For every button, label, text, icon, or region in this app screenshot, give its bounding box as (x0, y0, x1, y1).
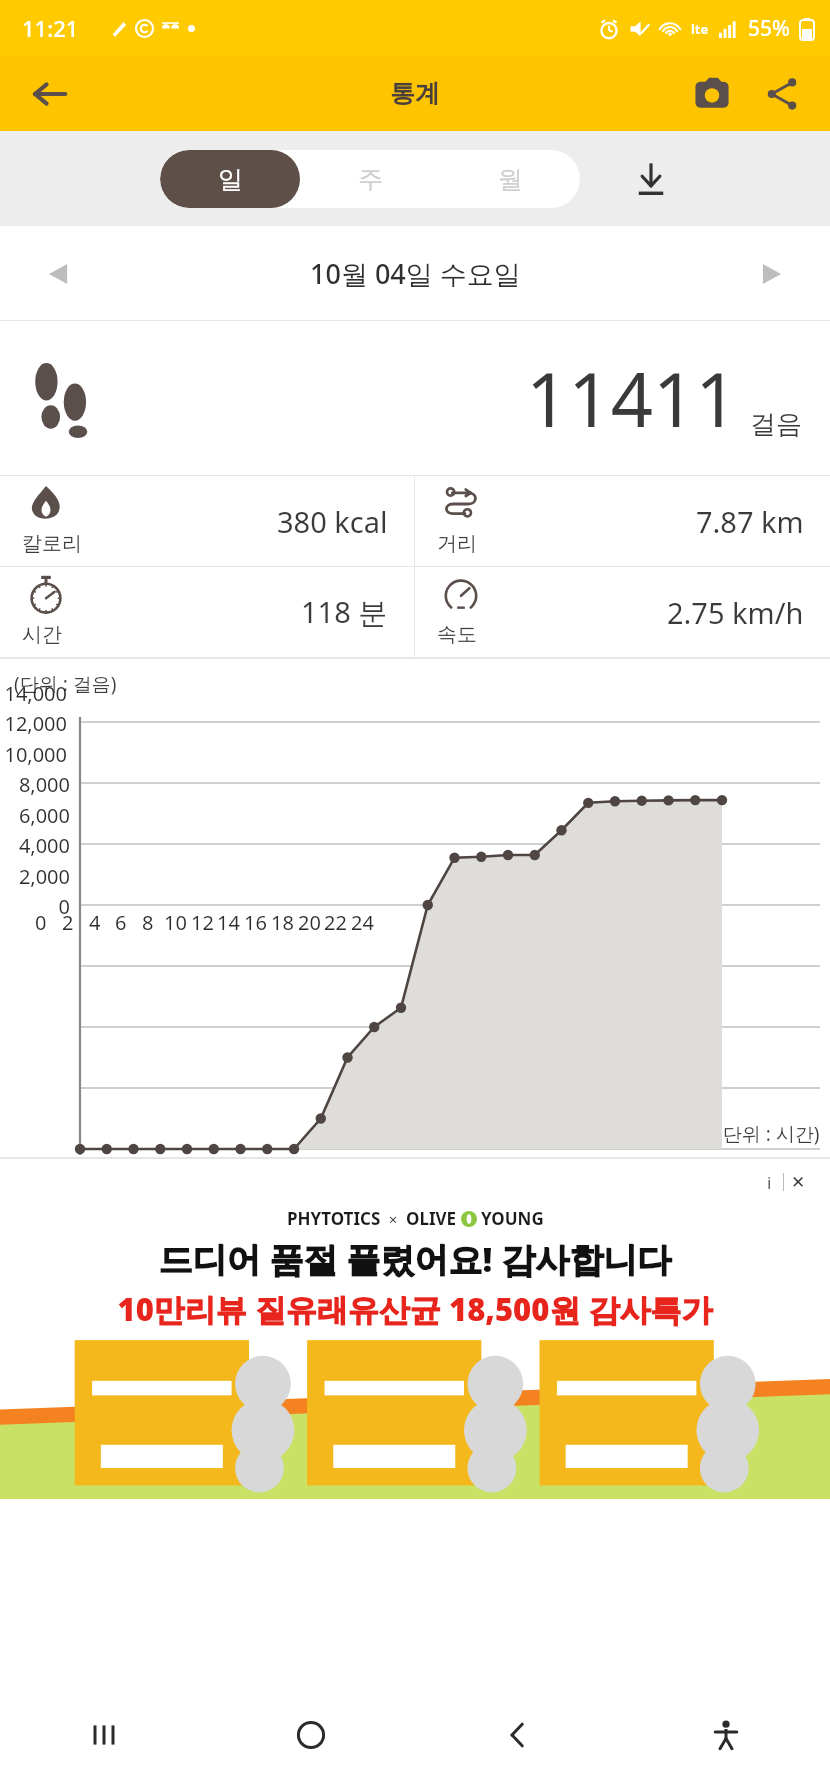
button[interactable]: Screenshot (688, 70, 736, 118)
staticText: 16 (244, 909, 267, 936)
button[interactable]: Accessibility (622, 1690, 830, 1780)
staticText: 118 분 (301, 592, 388, 632)
staticText: 22 (324, 909, 347, 936)
staticText: 6 (115, 909, 127, 936)
staticText: PHYTOTICS (287, 1207, 381, 1230)
staticText: 월 (498, 164, 523, 195)
staticText: 12,000 (4, 710, 67, 737)
staticText: 4,000 (18, 832, 70, 859)
staticText: YOUNG (481, 1207, 544, 1230)
staticText: lte (691, 20, 709, 38)
staticText: 속도 (437, 622, 477, 647)
button[interactable]: 월 (440, 150, 580, 208)
button[interactable]: Home (207, 1690, 414, 1780)
staticText: 4 (89, 909, 101, 936)
button[interactable]: Share (758, 70, 806, 118)
button[interactable]: 시간 (0, 567, 414, 657)
staticText: 55% (748, 14, 790, 43)
staticText: 10월 04일 수요일 (310, 255, 521, 292)
staticText: 거리 (437, 531, 477, 556)
staticText: 8 (142, 909, 154, 936)
staticText: 2.75 km/h (667, 593, 804, 632)
staticText: 걸음 (750, 408, 802, 441)
staticText: OLIVE (406, 1207, 457, 1230)
button[interactable]: Recents (0, 1690, 207, 1780)
staticText: 6,000 (18, 802, 70, 829)
button[interactable]: 칼로리 (0, 476, 414, 566)
staticText: 380 kcal (277, 502, 388, 541)
button[interactable]: Next day (744, 246, 800, 302)
staticText: (단위 : 시간) (717, 1121, 820, 1147)
staticText: 14,000 (4, 680, 67, 707)
button[interactable]: 속도 (415, 567, 830, 657)
staticText: 18 (271, 909, 294, 936)
staticText: 통계 (390, 78, 440, 109)
staticText: 2 (62, 909, 74, 936)
staticText: 12 (191, 909, 214, 936)
staticText: 드디어 품절 풀렸어요! 감사합니다 (0, 1236, 830, 1282)
staticText: 11411 (526, 348, 738, 449)
staticText: 10,000 (4, 741, 67, 768)
staticText: 11:21 (22, 13, 79, 43)
button[interactable]: Download (622, 150, 680, 208)
staticText: 일 (218, 164, 243, 195)
staticText: 14 (217, 909, 240, 936)
staticText: 0 (35, 909, 47, 936)
staticText: 칼로리 (22, 531, 82, 556)
staticText: (단위 : 걸음) (14, 671, 117, 697)
button[interactable]: Back (24, 68, 76, 120)
staticText: 7.87 km (696, 502, 804, 541)
button[interactable]: Previous day (30, 246, 86, 302)
button[interactable]: Ad info (755, 1167, 783, 1197)
staticText: 20 (298, 909, 321, 936)
staticText: 시간 (22, 622, 62, 647)
button[interactable]: Back (414, 1690, 622, 1780)
staticText: 2,000 (18, 863, 70, 890)
staticText: 0 (58, 893, 70, 920)
button[interactable]: 주 (300, 150, 440, 208)
staticText: ✕ (791, 1172, 806, 1192)
staticText: 주 (358, 164, 383, 195)
button[interactable]: 일 (160, 150, 300, 208)
staticText: 24 (351, 909, 374, 936)
staticText: i (767, 1171, 772, 1194)
staticText: 10만리뷰 질유래유산균 18,500원 감사특가 (0, 1288, 830, 1330)
button[interactable]: 거리 (415, 476, 830, 566)
staticText: 10 (164, 909, 187, 936)
staticText: × (381, 1209, 406, 1229)
button[interactable]: Close ad (784, 1167, 812, 1197)
staticText: 8,000 (18, 771, 70, 798)
button[interactable]: Ad info (0, 1159, 830, 1499)
